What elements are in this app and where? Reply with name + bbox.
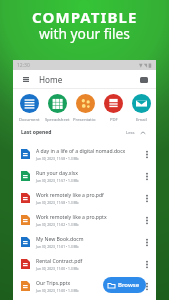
staticText: Work remotely like a pro.pptx <box>36 214 107 221</box>
button[interactable]: Run your day.xlsx <box>13 165 156 187</box>
staticText: A day in a life of a digital nomad.docx <box>36 148 126 155</box>
staticText: COMPATIBLE <box>32 7 138 27</box>
button[interactable]: Rental Contract.pdf <box>13 253 156 275</box>
button[interactable]: Work remotely like a pro.pdf <box>13 187 156 209</box>
staticText: Spreadsheet <box>45 117 70 123</box>
button[interactable]: Menu <box>19 73 32 86</box>
button[interactable]: Spreadsheet <box>45 94 70 123</box>
button[interactable]: My New Book.docm <box>13 231 156 253</box>
staticText: Rental Contract.pdf <box>36 258 83 265</box>
button[interactable]: Our Trips.pptx <box>13 275 156 297</box>
staticText: Jun 30, 2023, 11:00 • 1.3 Mb <box>36 266 79 270</box>
staticText: Jun 30, 2023, 11:58 • 1.3 Mb <box>36 200 79 204</box>
staticText: Jun 30, 2023, 11:02 • 1.3 Mb <box>36 222 79 226</box>
staticText: Jun 30, 2023, 11:57 • 1.3 Mb <box>36 178 79 182</box>
staticText: My New Book.docm <box>36 236 84 243</box>
button[interactable]: Grid view <box>137 73 150 86</box>
staticText: with your files <box>39 24 130 43</box>
staticText: Presentation <box>73 117 98 123</box>
staticText: Jun 30, 2023, 11:01 • 1.3 Mb <box>36 244 79 248</box>
button[interactable]: Presentation <box>73 94 98 123</box>
button[interactable]: More options <box>142 171 152 181</box>
button[interactable]: Browse <box>103 277 146 293</box>
staticText: Document <box>19 117 40 123</box>
staticText: Less <box>126 130 135 136</box>
button[interactable]: More options <box>142 215 152 225</box>
staticText: 12:30 <box>17 62 30 69</box>
button[interactable]: More options <box>142 193 152 203</box>
button[interactable]: More options <box>142 259 152 269</box>
staticText: PDF <box>110 117 118 123</box>
button[interactable]: More options <box>142 237 152 247</box>
staticText: Our Trips.pptx <box>36 280 71 287</box>
button[interactable]: Document <box>17 94 42 123</box>
staticText: Jun 30, 2023, 11:58 • 1.3 Mb <box>36 156 79 160</box>
staticText: Last opened <box>21 129 52 136</box>
staticText: Browse <box>118 281 140 289</box>
button[interactable]: Email <box>129 94 154 123</box>
staticText: Email <box>136 117 147 123</box>
button[interactable]: PDF <box>101 94 126 123</box>
button[interactable]: Less <box>124 130 148 136</box>
staticText: Work remotely like a pro.pdf <box>36 192 104 199</box>
button[interactable]: More options <box>142 281 152 291</box>
button[interactable]: A day in a life of a digital nomad.docx <box>13 143 156 165</box>
staticText: Home <box>39 74 63 85</box>
staticText: Run your day.xlsx <box>36 170 78 177</box>
button[interactable]: More options <box>142 149 152 159</box>
staticText: Jun 30, 2023, 11:00 • 1.3 Mb <box>36 288 79 292</box>
button[interactable]: Work remotely like a pro.pptx <box>13 209 156 231</box>
